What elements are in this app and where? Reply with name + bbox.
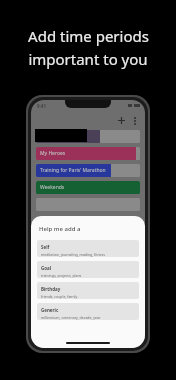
staticText: meditation, journaling, reading, fitness [41,252,105,257]
button[interactable]: Add [115,114,128,127]
staticText: friends, couple, family [41,294,78,299]
staticText: My Heroes [40,150,66,157]
button[interactable]: Generic [37,303,139,320]
staticText: 9:41 [37,103,46,109]
button[interactable]: My Heroes [36,147,140,160]
staticText: important to you [28,49,148,69]
staticText: Birthday [41,286,61,292]
staticText: trainings, projects, plans [41,273,82,278]
button[interactable]: Self [37,240,139,257]
button[interactable]: Training for Paris' Marathon [36,164,140,177]
staticText: Add time periods [28,26,149,46]
staticText: Generic [41,307,59,313]
button[interactable]: Birthday [37,282,139,299]
button[interactable]: Personal project [36,130,140,143]
staticText: Training for Paris' Marathon [40,167,106,174]
button[interactable]: More options [128,114,141,127]
button[interactable]: Weekends [36,181,140,194]
staticText: Weekends [40,184,65,191]
staticText: Goal [41,265,52,271]
staticText: Help me add a [39,225,81,233]
staticText: Self [41,244,50,250]
staticText: millennium, centenary, decade, year [41,315,101,320]
button[interactable]: Goal [37,261,139,278]
